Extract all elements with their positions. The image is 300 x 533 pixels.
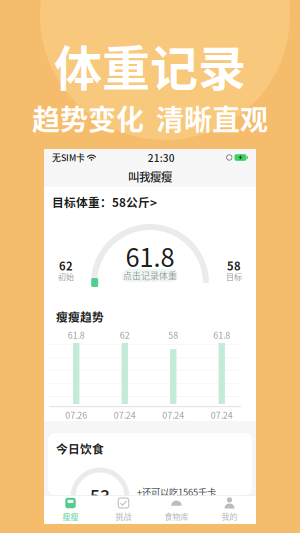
button[interactable]: 目标体重：58公斤> bbox=[44, 187, 256, 217]
staticText: 58 bbox=[168, 329, 178, 341]
staticText: 食物库 bbox=[164, 510, 188, 522]
staticText: 挑战 bbox=[115, 510, 131, 522]
staticText: 点击记录体重 bbox=[123, 269, 177, 282]
staticText: 62 bbox=[120, 329, 130, 341]
button[interactable]: 挑战 bbox=[97, 496, 150, 523]
button[interactable]: 我的 bbox=[203, 496, 256, 523]
staticText: 07.24 bbox=[114, 409, 136, 421]
button[interactable]: 点击记录体重 bbox=[122, 269, 178, 282]
staticText: +还可以吃1565千卡 bbox=[137, 485, 216, 498]
staticText: 58 bbox=[227, 257, 241, 274]
staticText: 53 bbox=[90, 483, 110, 508]
button[interactable]: 食物库 bbox=[150, 496, 203, 523]
staticText: 体重记录 bbox=[54, 30, 246, 100]
staticText: 61.8 bbox=[213, 329, 230, 341]
staticText: 21:30 bbox=[148, 150, 175, 165]
staticText: 我的 bbox=[221, 510, 237, 522]
staticText: 07.24 bbox=[211, 409, 233, 421]
staticText: 趋势变化 清晰直观 bbox=[32, 98, 268, 138]
staticText: 61.8 bbox=[125, 238, 174, 274]
button[interactable]: 瘦瘦 bbox=[44, 496, 97, 523]
staticText: 目标体重：58公斤> bbox=[52, 193, 157, 210]
staticText: 瘦瘦趋势 bbox=[56, 308, 104, 325]
staticText: 61.8 bbox=[68, 329, 85, 341]
staticText: 叫我瘦瘦 bbox=[128, 168, 172, 185]
staticText: 07.26 bbox=[65, 409, 87, 421]
staticText: 07.24 bbox=[162, 409, 184, 421]
staticText: 初始 bbox=[58, 271, 74, 282]
staticText: 瘦瘦 bbox=[62, 510, 78, 522]
staticText: 无SIM卡 bbox=[52, 151, 85, 164]
staticText: 目标 bbox=[226, 271, 242, 282]
staticText: 今日饮食 bbox=[56, 440, 104, 457]
staticText: 62 bbox=[59, 257, 73, 274]
